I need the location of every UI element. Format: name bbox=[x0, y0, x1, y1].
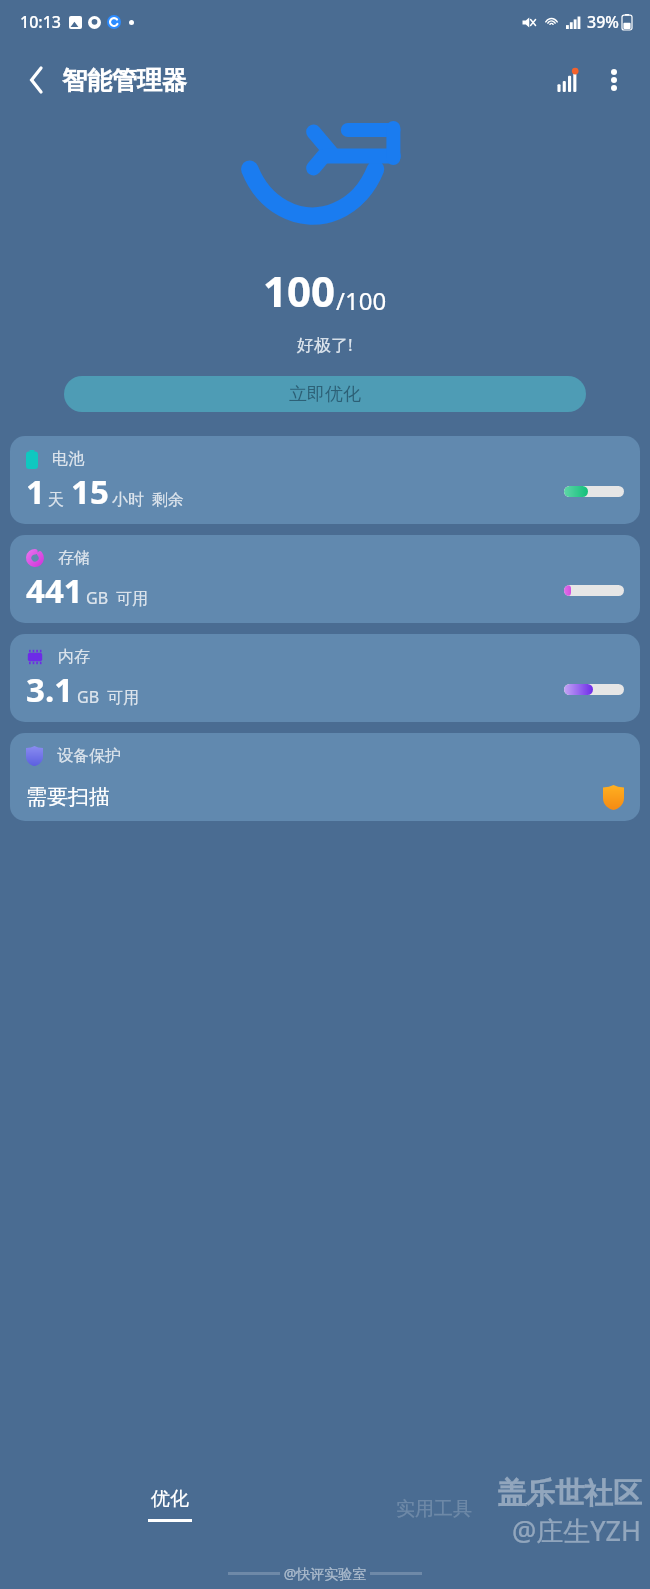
staticText: 存储 bbox=[58, 548, 90, 568]
button[interactable]: Usage statistics bbox=[546, 58, 590, 102]
staticText: 需要扫描 bbox=[26, 784, 110, 810]
staticText: 15 bbox=[71, 469, 109, 513]
staticText: 1 bbox=[26, 469, 45, 513]
staticText: 优化 bbox=[151, 1487, 189, 1511]
staticText: 剩余 bbox=[152, 490, 184, 510]
staticText: 设备保护 bbox=[57, 746, 121, 766]
button[interactable]: More options bbox=[592, 58, 636, 102]
button[interactable]: 内存 bbox=[10, 634, 640, 722]
button[interactable]: 设备保护 bbox=[10, 733, 640, 821]
staticText: 100 bbox=[263, 262, 336, 319]
staticText: 实用工具 bbox=[396, 1497, 472, 1521]
staticText: 盖乐世社区 bbox=[497, 1475, 642, 1512]
staticText: @快评实验室 bbox=[280, 1564, 370, 1583]
staticText: 3.1 bbox=[26, 667, 74, 711]
staticText: 好极了! bbox=[297, 333, 353, 356]
button[interactable]: 优化 bbox=[148, 1487, 192, 1522]
button[interactable]: 立即优化 bbox=[64, 376, 586, 412]
staticText: 小时 bbox=[112, 490, 144, 510]
staticText: 内存 bbox=[58, 647, 90, 667]
staticText: 电池 bbox=[52, 449, 84, 469]
staticText: 39% bbox=[587, 11, 619, 33]
staticText: 智能管理器 bbox=[62, 65, 187, 96]
staticText: 立即优化 bbox=[289, 383, 361, 406]
staticText: GB bbox=[77, 686, 100, 708]
button[interactable]: 存储 bbox=[10, 535, 640, 623]
staticText: /100 bbox=[336, 284, 387, 317]
staticText: 可用 bbox=[107, 688, 139, 708]
staticText: 10:13 bbox=[20, 11, 61, 33]
staticText: 天 bbox=[48, 490, 64, 510]
staticText: @庄生YZH bbox=[512, 1512, 642, 1549]
button[interactable]: 电池 bbox=[10, 436, 640, 524]
button[interactable]: Back bbox=[16, 60, 56, 100]
staticText: 441 bbox=[26, 568, 83, 612]
staticText: GB bbox=[86, 587, 109, 609]
staticText: 可用 bbox=[116, 589, 148, 609]
